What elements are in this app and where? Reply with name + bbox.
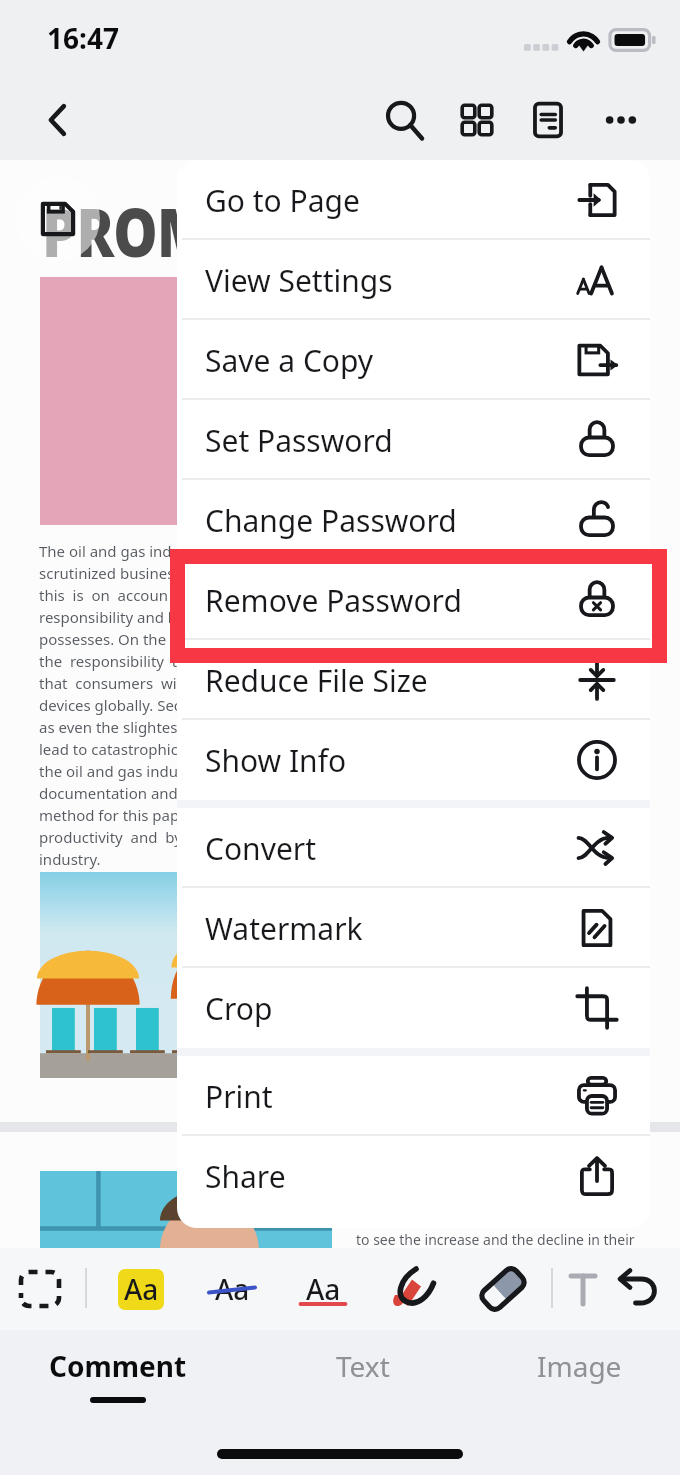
staticText: Aa (124, 1270, 159, 1308)
staticText: Aa (215, 1270, 250, 1308)
staticText: The oil and gas indu (39, 541, 181, 563)
button[interactable]: More options (591, 86, 651, 154)
button[interactable]: Pen (384, 1248, 444, 1330)
staticText: Crop (205, 988, 273, 1029)
staticText: Share (205, 1156, 286, 1197)
button[interactable]: Set Password (177, 400, 650, 480)
staticText: PROM (42, 184, 210, 277)
staticText: Image (537, 1347, 622, 1385)
button[interactable]: Text (245, 1330, 481, 1420)
button[interactable]: Select area (10, 1248, 70, 1330)
button[interactable]: Save (16, 177, 100, 261)
button[interactable]: Go to Page (177, 160, 650, 240)
staticText: Aa (306, 1270, 341, 1308)
staticText: industry. (39, 849, 101, 871)
button[interactable]: Change Password (177, 480, 650, 560)
staticText: Go to Page (205, 180, 360, 221)
staticText: Save a Copy (205, 340, 374, 381)
staticText: Watermark (205, 908, 363, 949)
staticText: View Settings (205, 260, 393, 301)
staticText: Show Info (205, 740, 347, 781)
staticText: method for this paperw (39, 805, 206, 827)
staticText: 16:47 (47, 19, 119, 57)
staticText: documentation and pa (39, 783, 200, 805)
button[interactable]: Back (22, 84, 94, 156)
button[interactable]: Underline (289, 1248, 357, 1330)
button[interactable]: Convert (177, 808, 650, 888)
button[interactable]: Outline (518, 86, 578, 154)
button[interactable]: Undo (608, 1248, 668, 1330)
button[interactable]: Text (553, 1248, 613, 1330)
button[interactable]: Highlight (107, 1248, 175, 1330)
staticText: Comment (49, 1347, 187, 1385)
staticText: Reduce File Size (205, 660, 428, 701)
staticText: responsibility and lia (39, 607, 184, 629)
staticText: Remove Password (205, 580, 462, 621)
staticText: the oil and gas industr (39, 761, 197, 783)
staticText: Set Password (205, 420, 393, 461)
button[interactable]: Crop (177, 968, 650, 1048)
button[interactable]: Comment (0, 1330, 236, 1420)
staticText: as even the slightest b (39, 717, 196, 739)
staticText: Text (336, 1347, 390, 1385)
staticText: possesses. On the on (39, 629, 189, 651)
staticText: productivity and by s (39, 827, 197, 849)
button[interactable]: Reduce File Size (177, 640, 650, 720)
staticText: this is on accoun (39, 585, 168, 607)
staticText: the responsibility to (39, 651, 187, 673)
button[interactable]: Page thumbnails (447, 86, 507, 154)
staticText: to see the increase and the decline in t… (356, 1230, 635, 1249)
button[interactable]: View Settings (177, 240, 650, 320)
staticText: devices globally. Seco (39, 695, 191, 717)
staticText: that consumers will (39, 673, 185, 695)
button[interactable]: Strikethrough (198, 1248, 266, 1330)
button[interactable]: Eraser (473, 1248, 533, 1330)
button[interactable]: Image (477, 1330, 680, 1420)
button[interactable]: Watermark (177, 888, 650, 968)
staticText: scrutinized businesse (39, 563, 191, 585)
button[interactable]: Share (177, 1136, 650, 1216)
button[interactable]: Search (374, 86, 434, 154)
button[interactable]: Show Info (177, 720, 650, 800)
button[interactable]: Print (177, 1056, 650, 1136)
staticText: Print (205, 1076, 273, 1117)
staticText: lead to catastrophic c (39, 739, 189, 761)
button[interactable]: Save a Copy (177, 320, 650, 400)
button[interactable]: Remove Password (177, 560, 650, 640)
staticText: Convert (205, 828, 317, 869)
staticText: Change Password (205, 500, 457, 541)
